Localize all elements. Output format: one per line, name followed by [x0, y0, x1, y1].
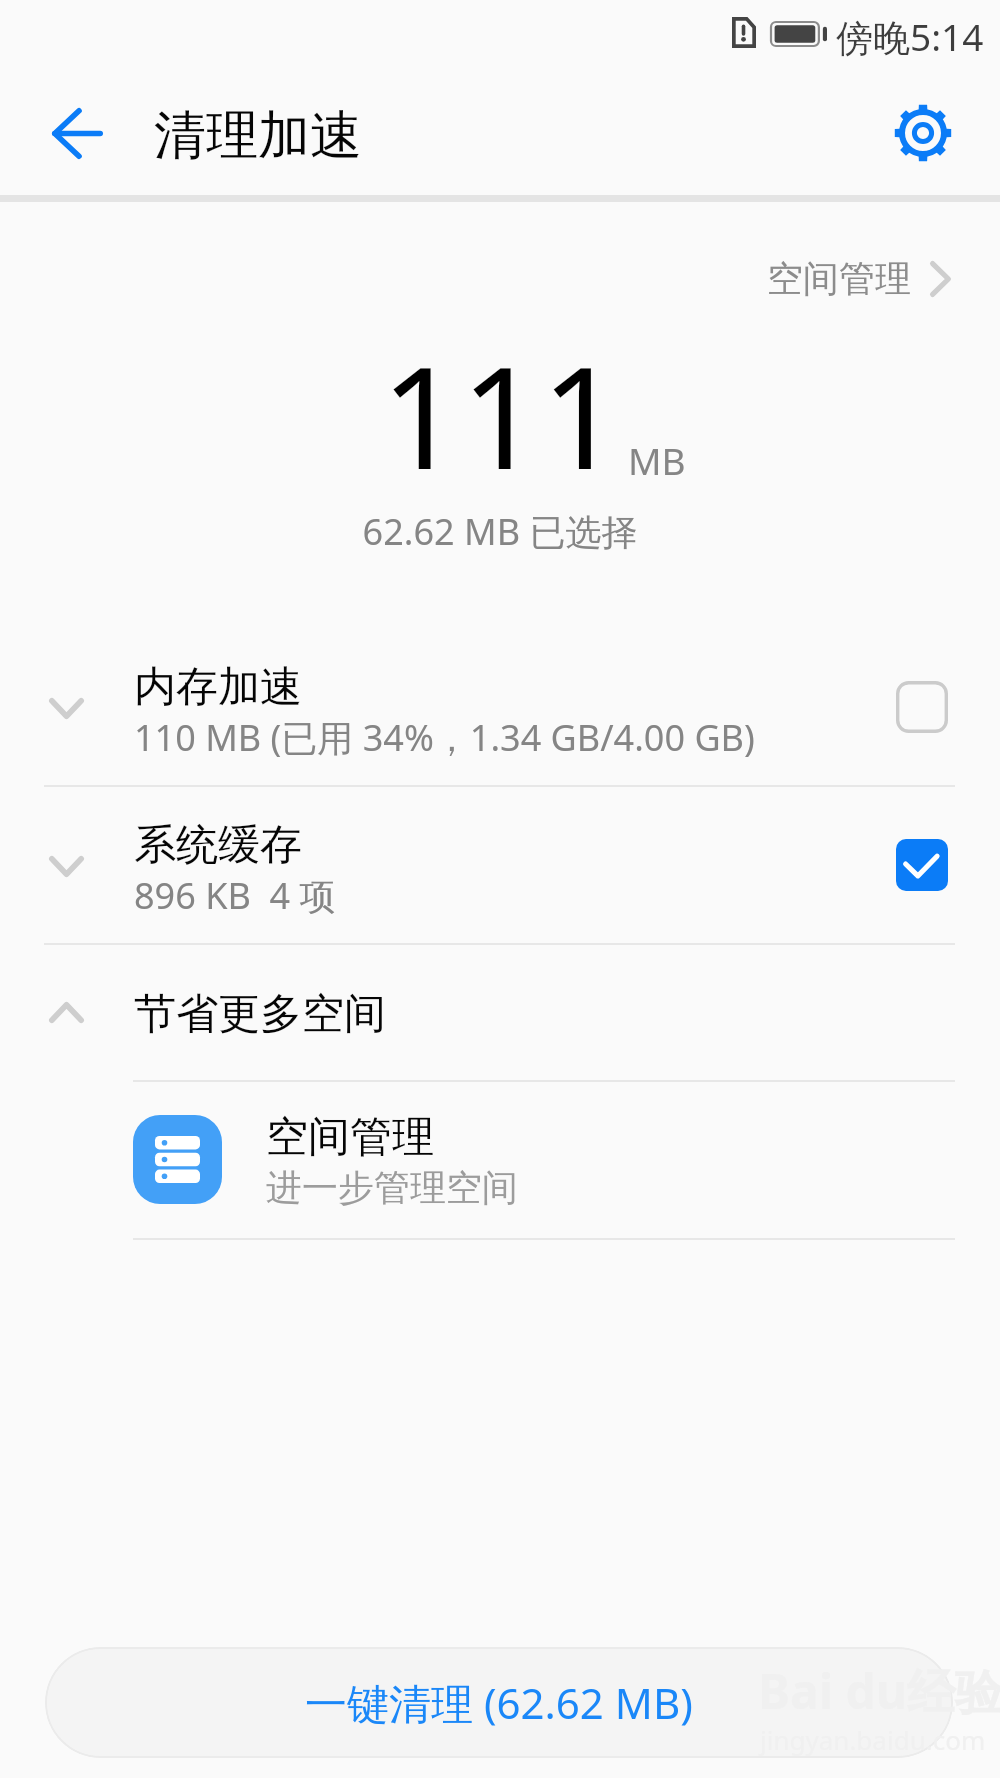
- staticText: 空间管理: [767, 256, 911, 301]
- staticText: 空间管理: [266, 1111, 434, 1164]
- staticText: 傍晚5:14: [836, 11, 984, 62]
- button[interactable]: 系统缓存: [0, 787, 1000, 943]
- button[interactable]: 一键清理 (62.62 MB): [45, 1647, 953, 1758]
- staticText: 系统缓存: [134, 819, 302, 872]
- button[interactable]: Not selected: [896, 681, 948, 733]
- button[interactable]: Settings: [882, 92, 964, 174]
- staticText: 清理加速: [154, 103, 362, 169]
- staticText: MB: [628, 435, 686, 485]
- button[interactable]: 空间管理: [767, 256, 951, 301]
- staticText: 896 KB 4 项: [134, 871, 336, 920]
- staticText: 111: [381, 319, 622, 510]
- button[interactable]: Selected: [896, 839, 948, 891]
- staticText: 节省更多空间: [134, 988, 386, 1041]
- staticText: 内存加速: [134, 661, 302, 714]
- button[interactable]: 内存加速: [0, 629, 1000, 785]
- staticText: Bai du经验: [758, 1658, 1000, 1724]
- button[interactable]: 节省更多空间: [0, 945, 1000, 1079]
- staticText: 一键清理 (62.62 MB): [305, 1674, 693, 1731]
- staticText: 62.62 MB 已选择: [0, 507, 1000, 556]
- staticText: jingyan.baidu.com: [760, 1722, 986, 1757]
- button[interactable]: 空间管理: [0, 1082, 1000, 1238]
- staticText: 进一步管理空间: [266, 1165, 518, 1210]
- button[interactable]: Back: [26, 92, 128, 174]
- staticText: 110 MB (已用 34%，1.34 GB/4.00 GB): [134, 713, 755, 762]
